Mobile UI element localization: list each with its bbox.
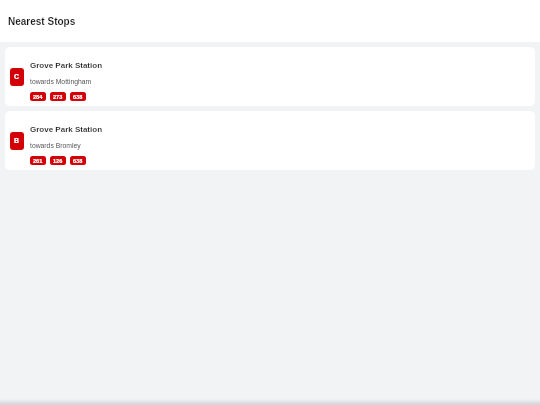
staticText: 638 — [73, 158, 83, 164]
button[interactable]: B — [5, 111, 535, 170]
staticText: B — [14, 137, 20, 145]
staticText: 261 — [33, 158, 43, 164]
staticText: 284 — [33, 94, 43, 100]
staticText: Grove Park Station — [30, 125, 103, 134]
staticText: towards Bromley — [30, 142, 81, 150]
staticText: Grove Park Station — [30, 61, 103, 70]
staticText: towards Mottingham — [30, 78, 92, 86]
staticText: 126 — [53, 158, 63, 164]
staticText: 638 — [73, 94, 83, 100]
staticText: Nearest Stops — [8, 16, 76, 27]
button[interactable]: C — [5, 47, 535, 106]
staticText: C — [14, 73, 20, 81]
staticText: 273 — [53, 94, 63, 100]
